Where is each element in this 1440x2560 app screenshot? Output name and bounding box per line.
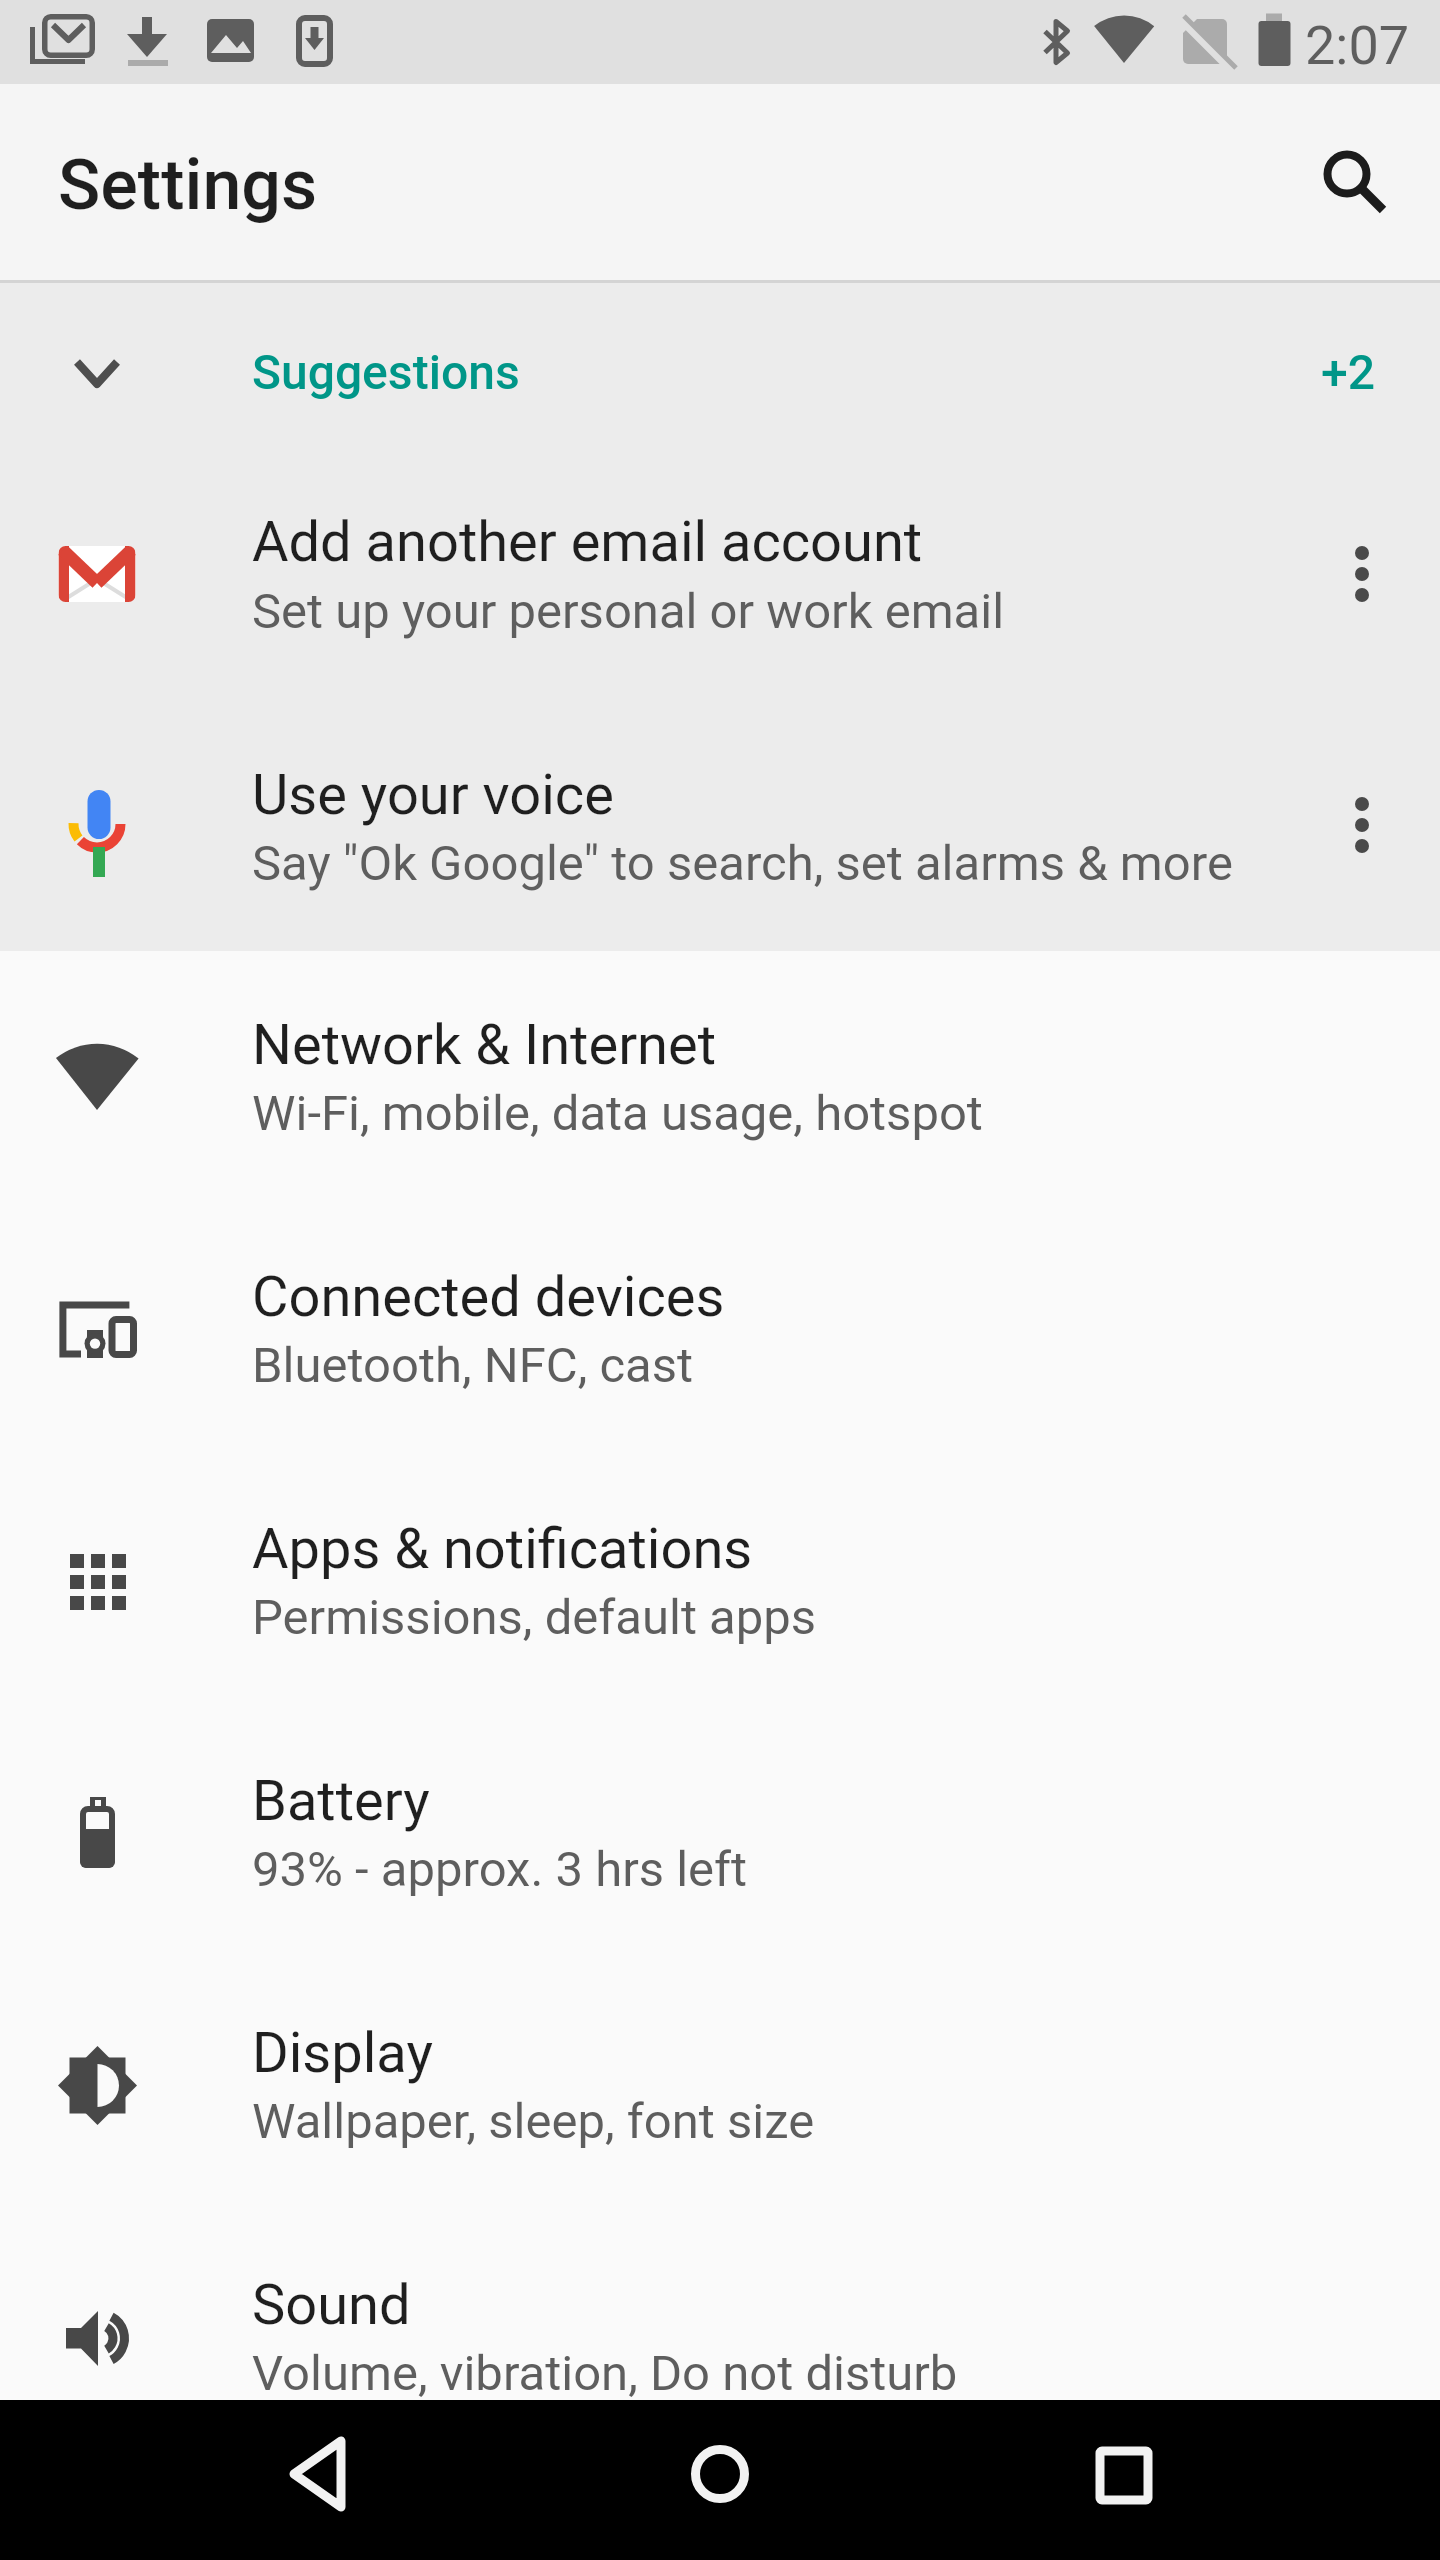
staticText: Use your voice <box>252 762 614 828</box>
staticText: Add another email account <box>252 509 923 575</box>
button[interactable]: Battery <box>0 1707 1440 1959</box>
button[interactable]: Suggestions <box>0 283 1440 448</box>
button[interactable]: Connected devices <box>0 1203 1440 1455</box>
staticText: Volume, vibration, Do not disturb <box>252 2345 958 2402</box>
button[interactable]: Use your voice <box>0 700 1440 951</box>
staticText: Connected devices <box>252 1264 725 1330</box>
staticText: Wi-Fi, mobile, data usage, hotspot <box>252 1085 983 1142</box>
button[interactable] <box>1043 2400 1203 2560</box>
staticText: Permissions, default apps <box>252 1589 817 1646</box>
button[interactable]: Add another email account <box>0 448 1440 700</box>
staticText: Apps & notifications <box>252 1516 753 1582</box>
staticText: Battery <box>252 1768 430 1834</box>
staticText: Display <box>252 2020 433 2086</box>
staticText: Settings <box>58 144 318 226</box>
staticText: Sound <box>252 2272 411 2338</box>
button[interactable] <box>640 2400 800 2560</box>
button[interactable] <box>1299 126 1395 222</box>
button[interactable]: Display <box>0 1959 1440 2211</box>
staticText: Suggestions <box>252 344 520 400</box>
staticText: 2:07 <box>1305 14 1410 77</box>
staticText: Set up your personal or work email <box>252 583 1005 640</box>
staticText: Wallpaper, sleep, font size <box>252 2093 815 2150</box>
staticText: +2 <box>1321 344 1376 400</box>
button[interactable]: Apps & notifications <box>0 1455 1440 1707</box>
staticText: Bluetooth, NFC, cast <box>252 1337 694 1394</box>
staticText: 93% - approx. 3 hrs left <box>252 1841 748 1898</box>
staticText: Say "Ok Google" to search, set alarms & … <box>252 835 1233 892</box>
button[interactable] <box>236 2400 396 2560</box>
staticText: Network & Internet <box>252 1012 717 1078</box>
button[interactable]: Network & Internet <box>0 951 1440 1203</box>
button[interactable]: Sound <box>0 2211 1440 2463</box>
